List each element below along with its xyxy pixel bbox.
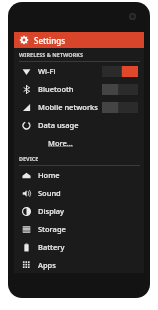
button[interactable]: Data usage [14, 116, 144, 134]
staticText: Settings [34, 35, 66, 46]
button[interactable]: More... [14, 134, 144, 152]
button[interactable]: Mobile networks toggle [102, 102, 138, 113]
staticText: WIRELESS & NETWORKS [19, 51, 83, 58]
staticText: Wi-Fi [38, 66, 56, 76]
staticText: Data usage [38, 120, 79, 130]
staticText: Mobile networks [38, 102, 98, 112]
button[interactable]: Display [14, 202, 144, 220]
staticText: Sound [38, 188, 61, 198]
button[interactable]: Sound [14, 184, 144, 202]
staticText: More... [48, 138, 73, 148]
button[interactable]: Mobile networks [14, 98, 144, 116]
button[interactable]: Battery [14, 238, 144, 256]
button[interactable]: Settings [14, 32, 144, 48]
staticText: Storage [38, 224, 66, 234]
button[interactable]: Bluetooth [14, 80, 144, 98]
button[interactable]: Wi-Fi toggle [102, 66, 138, 77]
staticText: Battery [38, 242, 65, 252]
button[interactable]: Home [14, 166, 144, 184]
staticText: Display [38, 206, 65, 216]
staticText: Bluetooth [38, 84, 74, 94]
button[interactable]: Apps [14, 256, 144, 273]
staticText: Home [38, 170, 60, 180]
staticText: Apps [38, 260, 56, 270]
staticText: DEVICE [19, 155, 39, 162]
button[interactable]: Wi-Fi [14, 62, 144, 80]
button[interactable]: Bluetooth toggle [102, 84, 138, 95]
button[interactable]: Storage [14, 220, 144, 238]
